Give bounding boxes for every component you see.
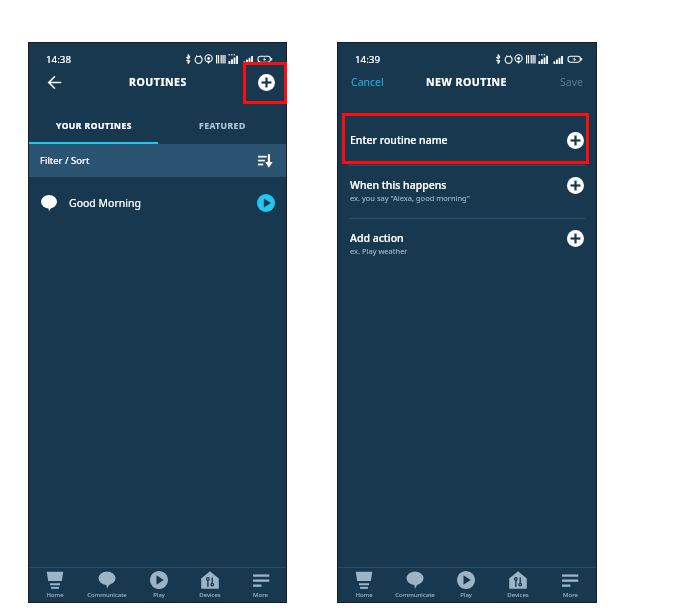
- button[interactable]: Add: [563, 226, 587, 250]
- button[interactable]: YOUR ROUTINES: [29, 112, 158, 140]
- button[interactable]: Add: [563, 173, 587, 197]
- staticText: Play: [153, 591, 165, 599]
- staticText: Communicate: [395, 591, 435, 599]
- staticText: FEATURED: [199, 120, 246, 132]
- button[interactable]: Filter / Sort: [29, 144, 286, 177]
- button[interactable]: Cancel: [347, 70, 388, 94]
- button[interactable]: Communicate: [389, 568, 440, 602]
- staticText: ROUTINES: [129, 75, 187, 89]
- button[interactable]: Save: [556, 70, 587, 94]
- staticText: 14:39: [355, 53, 381, 66]
- staticText: Enter routine name: [350, 133, 448, 147]
- button[interactable]: Add action: [338, 220, 596, 269]
- staticText: Add action: [350, 231, 404, 245]
- button[interactable]: Good Morning: [29, 177, 286, 229]
- button[interactable]: Add: [563, 128, 587, 152]
- button[interactable]: FEATURED: [158, 112, 286, 140]
- staticText: Devices: [199, 591, 221, 599]
- staticText: Home: [355, 591, 373, 599]
- button[interactable]: Play: [133, 568, 184, 602]
- button[interactable]: Home: [338, 568, 389, 602]
- button[interactable]: Devices: [492, 568, 544, 602]
- staticText: When this happens: [350, 178, 447, 192]
- staticText: Save: [560, 75, 583, 89]
- staticText: Play: [460, 591, 472, 599]
- staticText: Home: [46, 591, 64, 599]
- button[interactable]: Play: [440, 568, 492, 602]
- staticText: More: [563, 591, 578, 599]
- button[interactable]: Communicate: [81, 568, 133, 602]
- button[interactable]: Enter routine name: [338, 118, 596, 162]
- staticText: YOUR ROUTINES: [56, 120, 132, 132]
- button[interactable]: Add routine: [254, 70, 278, 94]
- button[interactable]: More: [235, 568, 286, 602]
- button[interactable]: Home: [29, 568, 81, 602]
- button[interactable]: More: [544, 568, 596, 602]
- staticText: Filter / Sort: [40, 154, 90, 167]
- staticText: More: [253, 591, 268, 599]
- staticText: Devices: [507, 591, 529, 599]
- staticText: ex. Play weather: [350, 246, 408, 256]
- staticText: ex. you say "Alexa, good morning": [350, 193, 470, 203]
- staticText: Good Morning: [69, 196, 141, 210]
- button[interactable]: When this happens: [338, 167, 596, 216]
- staticText: NEW ROUTINE: [426, 75, 508, 89]
- staticText: Communicate: [87, 591, 127, 599]
- button[interactable]: Back: [40, 68, 68, 96]
- button[interactable]: Devices: [184, 568, 235, 602]
- button[interactable]: Play routine: [255, 192, 277, 214]
- staticText: Cancel: [351, 75, 384, 89]
- staticText: 14:38: [46, 53, 72, 66]
